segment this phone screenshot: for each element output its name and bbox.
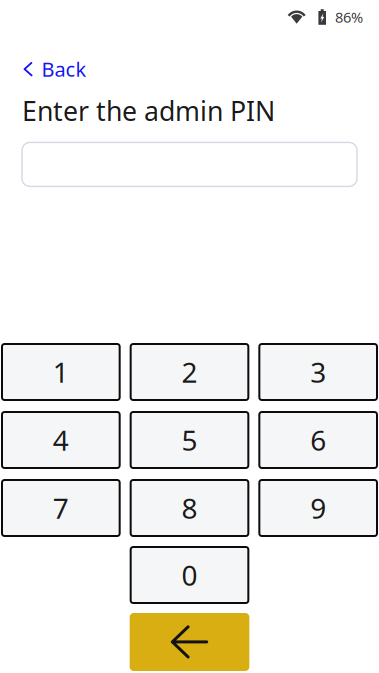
button[interactable]: 1 <box>1 343 121 401</box>
staticText: Enter the admin PIN <box>22 93 275 128</box>
staticText: Back <box>41 56 86 82</box>
staticText: 0 <box>181 556 197 594</box>
button[interactable]: 0 <box>130 546 249 604</box>
staticText: 4 <box>53 421 69 459</box>
button[interactable]: 4 <box>1 411 121 469</box>
button[interactable]: Back <box>0 59 110 79</box>
staticText: 6 <box>310 421 326 459</box>
button[interactable]: 6 <box>258 411 378 469</box>
button[interactable]: 5 <box>130 411 249 469</box>
button[interactable]: 9 <box>258 479 378 537</box>
button[interactable]: 8 <box>130 479 249 537</box>
staticText: 3 <box>310 353 326 391</box>
staticText: 5 <box>181 421 197 459</box>
staticText: 8 <box>181 489 197 527</box>
button[interactable]: 2 <box>130 343 249 401</box>
staticText: 7 <box>53 489 69 527</box>
button[interactable]: 7 <box>1 479 121 537</box>
staticText: 86% <box>335 7 363 27</box>
button[interactable]: 3 <box>258 343 378 401</box>
staticText: 1 <box>53 353 69 391</box>
button[interactable]: Delete <box>130 613 249 671</box>
staticText: 2 <box>181 353 197 391</box>
staticText: 9 <box>310 489 326 527</box>
